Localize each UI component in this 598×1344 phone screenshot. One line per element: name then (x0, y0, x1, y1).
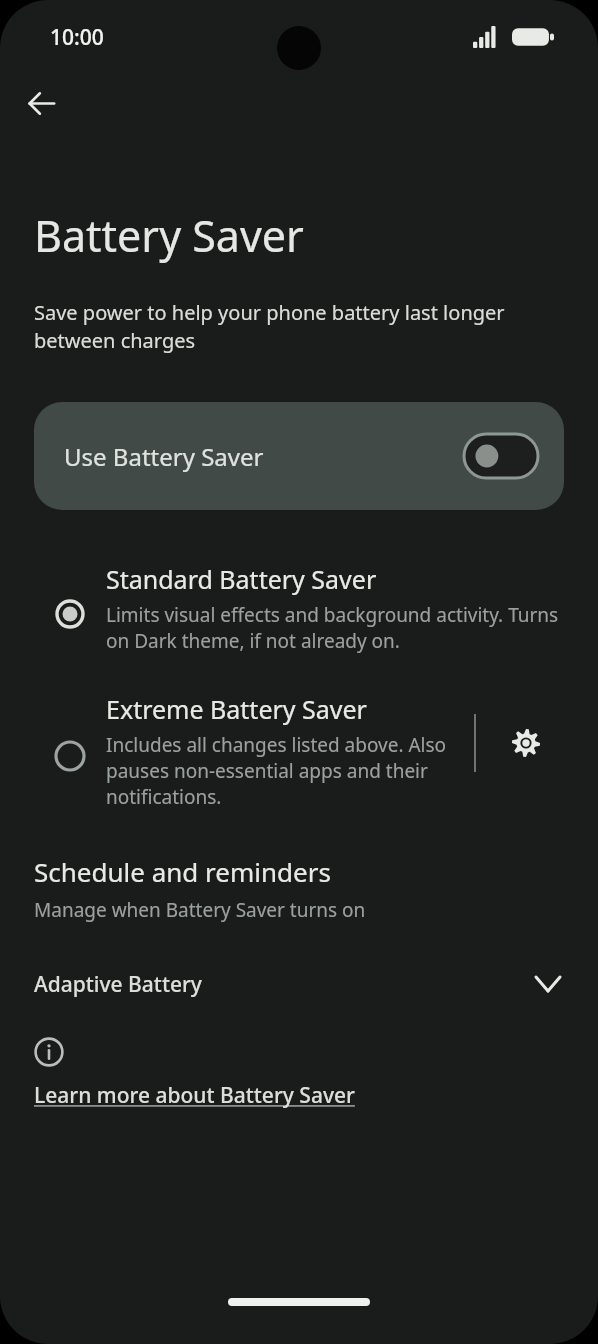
button[interactable]: Adaptive Battery (0, 957, 598, 1011)
staticText: Schedule and reminders (34, 854, 331, 889)
button[interactable]: Extreme Battery Saver (34, 692, 470, 820)
staticText: 10:00 (50, 23, 104, 52)
staticText: Battery Saver (34, 206, 304, 265)
staticText: Standard Battery Saver (106, 562, 377, 596)
staticText: Use Battery Saver (64, 440, 464, 473)
staticText: Save power to help your phone battery la… (34, 299, 558, 354)
staticText: Limits visual effects and background act… (106, 602, 568, 654)
button[interactable]: Use Battery Saver (34, 402, 564, 510)
staticText: Extreme Battery Saver (106, 692, 367, 726)
staticText: Manage when Battery Saver turns on (34, 897, 366, 923)
button[interactable]: Extreme Battery Saver settings (499, 716, 553, 770)
button[interactable]: Back (18, 80, 64, 126)
button[interactable]: Standard Battery Saver (0, 562, 598, 666)
staticText: Includes all changes listed above. Also … (106, 732, 470, 810)
staticText: Adaptive Battery (34, 970, 528, 999)
button[interactable]: Learn more about Battery Saver (34, 1081, 355, 1110)
staticText: Learn more about Battery Saver (34, 1081, 355, 1110)
button[interactable]: Schedule and reminders (0, 854, 598, 923)
